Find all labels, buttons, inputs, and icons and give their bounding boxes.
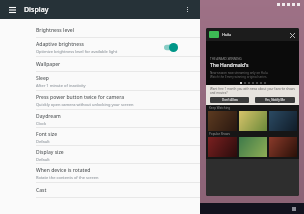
staticText: THE AWARD-WINNING — [210, 57, 242, 61]
staticText: Quickly open camera without unlocking yo… — [36, 102, 134, 107]
staticText: After 1 minute of inactivity — [36, 83, 86, 88]
staticText: Default — [36, 139, 50, 144]
staticText: Brightness level — [36, 27, 75, 34]
staticText: Clock — [36, 121, 47, 126]
button[interactable]: Sleep — [0, 72, 200, 91]
staticText: Sleep — [36, 75, 49, 82]
button[interactable]: Display size — [0, 146, 200, 164]
button[interactable]: Daydream — [0, 110, 200, 128]
button[interactable]: Yes, Notify Me — [255, 97, 295, 103]
button[interactable]: When device is rotated — [0, 164, 200, 183]
staticText: Popular Shows — [209, 132, 230, 136]
staticText: Don't Allow — [222, 98, 238, 102]
staticText: Yes, Notify Me — [265, 98, 285, 102]
button[interactable]: Wallpaper — [0, 57, 200, 72]
staticText: Daydream — [36, 113, 61, 120]
staticText: Font size — [36, 131, 58, 138]
staticText: Wallpaper — [36, 61, 61, 68]
staticText: and movies? — [210, 91, 228, 95]
staticText: Display size — [36, 149, 64, 156]
button[interactable]: Cast — [0, 183, 200, 198]
button[interactable]: Font size — [0, 128, 200, 146]
button[interactable]: Hulu — [206, 28, 299, 196]
staticText: Rotate the contents of the screen — [36, 175, 99, 180]
button[interactable]: Open navigation drawer — [7, 4, 18, 15]
staticText: Want free 1 month you with news about yo… — [210, 87, 295, 91]
staticText: Hulu — [222, 32, 232, 37]
button[interactable]: Don't Allow — [210, 97, 249, 103]
button[interactable]: Adaptive brightness — [0, 38, 200, 57]
staticText: Adaptive brightness — [36, 41, 84, 48]
staticText: Cast — [36, 187, 47, 194]
staticText: The Handmaid's — [210, 62, 249, 69]
button[interactable]: Brightness level — [0, 23, 200, 38]
button[interactable]: More options — [182, 4, 193, 15]
button[interactable]: Press power button twice for camera — [0, 91, 200, 110]
staticText: When device is rotated — [36, 167, 91, 174]
staticText: Watch the Emmy winning original series. — [210, 75, 268, 79]
staticText: Display — [24, 5, 49, 15]
staticText: Press power button twice for camera — [36, 94, 125, 101]
button[interactable]: Close Hulu — [288, 31, 296, 39]
staticText: Optimize brightness level for available … — [36, 49, 118, 54]
staticText: Keep Watching — [209, 106, 231, 110]
staticText: Default — [36, 157, 50, 162]
button[interactable]: Adaptive brightness toggle — [164, 43, 178, 52]
staticText: New season now streaming only on Hulu. — [210, 71, 269, 75]
